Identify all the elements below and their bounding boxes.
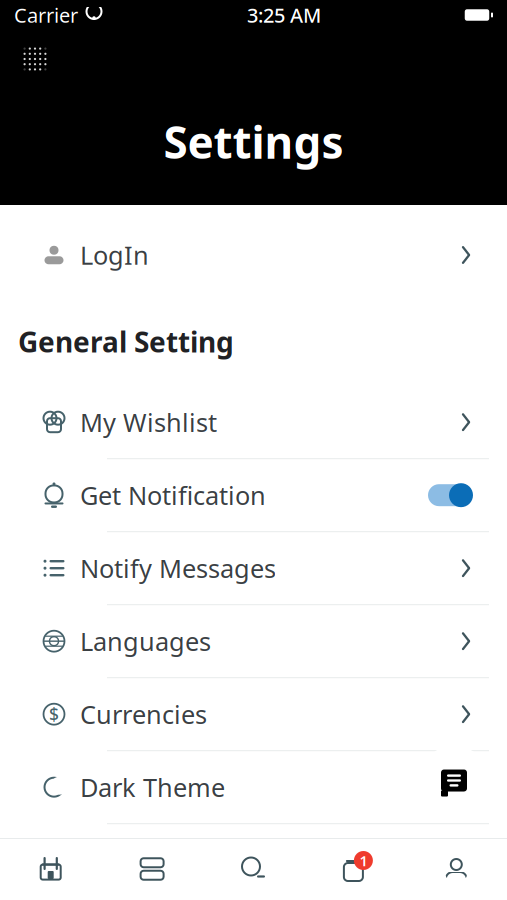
button[interactable]: Get Notification xyxy=(0,459,507,532)
button[interactable]: Home xyxy=(0,855,101,883)
button[interactable]: Categories xyxy=(101,855,203,883)
button[interactable]: Notify Messages xyxy=(0,532,507,605)
button[interactable]: My Wishlist xyxy=(0,386,507,459)
staticText: LogIn xyxy=(80,238,149,272)
staticText: Currencies xyxy=(80,697,207,731)
staticText: Settings xyxy=(163,113,343,171)
staticText: Languages xyxy=(80,624,211,658)
staticText: 1 xyxy=(359,851,367,870)
staticText: Notify Messages xyxy=(80,551,276,585)
button[interactable]: Chat support xyxy=(417,746,491,820)
button[interactable]: LogIn xyxy=(0,219,507,291)
button[interactable]: Dark Theme xyxy=(0,751,507,824)
staticText: $ xyxy=(49,703,59,726)
button[interactable]: Search xyxy=(203,855,304,883)
staticText: Get Notification xyxy=(80,478,266,512)
staticText: Rate the App xyxy=(80,843,234,877)
button[interactable]: Menu xyxy=(12,36,58,82)
button[interactable]: $ xyxy=(0,678,507,751)
button[interactable]: Languages xyxy=(0,605,507,678)
staticText: General Setting xyxy=(18,323,234,360)
button[interactable]: Profile xyxy=(406,855,507,883)
staticText: Dark Theme xyxy=(80,770,225,804)
button[interactable]: Rate the App xyxy=(0,824,507,897)
staticText: Carrier xyxy=(14,2,78,28)
staticText: My Wishlist xyxy=(80,405,217,439)
button[interactable]: Cart, 1 item xyxy=(304,851,406,887)
staticText: 3:25 AM xyxy=(247,2,321,28)
